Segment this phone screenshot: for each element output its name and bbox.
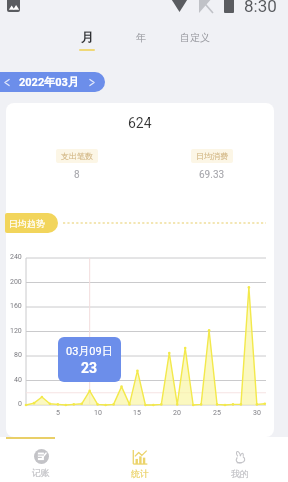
staticText: 240	[10, 253, 22, 261]
staticText: 40	[14, 376, 22, 384]
staticText: 统计	[131, 468, 149, 479]
button[interactable]: 统计	[116, 437, 164, 482]
staticText: 200	[10, 278, 22, 286]
staticText: 69.33	[199, 169, 225, 181]
staticText: 2022年03月	[19, 75, 79, 89]
staticText: 25	[213, 409, 221, 417]
button[interactable]: 自定义	[173, 31, 217, 44]
staticText: 5	[56, 409, 60, 417]
staticText: 0	[18, 400, 22, 408]
staticText: 支出笔数	[61, 151, 93, 161]
staticText: 03月09日	[66, 344, 113, 358]
staticText: 80	[14, 351, 22, 359]
staticText: 15	[133, 409, 141, 417]
staticText: 20	[173, 409, 181, 417]
staticText: 120	[10, 327, 22, 335]
button[interactable]: 记账	[17, 437, 65, 482]
other: 记账	[34, 449, 49, 464]
staticText: 我的	[231, 468, 249, 479]
staticText: 8:30	[244, 0, 277, 16]
staticText: 23	[81, 360, 98, 376]
staticText: 160	[10, 302, 22, 310]
staticText: 日均消费	[196, 151, 228, 161]
staticText: 624	[128, 115, 152, 131]
button[interactable]: 我的	[216, 437, 264, 482]
staticText: 记账	[32, 467, 50, 478]
button[interactable]: 年	[119, 31, 163, 44]
staticText: 日均趋势	[9, 218, 45, 229]
staticText: 自定义	[180, 31, 210, 44]
other: 我的	[232, 449, 248, 465]
staticText: 10	[94, 409, 102, 417]
staticText: 年	[136, 31, 146, 44]
staticText: 8	[74, 169, 80, 181]
staticText: 月	[81, 29, 94, 45]
staticText: 30	[253, 409, 261, 417]
button[interactable]: 2022年03月	[0, 72, 105, 92]
button[interactable]: 月	[65, 29, 109, 51]
other: 统计	[132, 449, 148, 465]
